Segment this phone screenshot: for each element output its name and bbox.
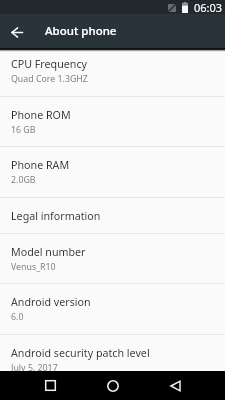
button[interactable]: Navigate up bbox=[0, 14, 34, 48]
button[interactable]: Phone ROM bbox=[0, 97, 225, 146]
button[interactable]: Recent apps bbox=[32, 371, 69, 400]
staticText: 06:03 bbox=[194, 0, 223, 14]
staticText: 16 GB bbox=[11, 124, 36, 136]
staticText: 6.0 bbox=[11, 311, 24, 323]
button[interactable]: Baseband version bbox=[0, 386, 225, 400]
staticText: Phone RAM bbox=[11, 158, 70, 173]
button[interactable]: Android security patch level bbox=[0, 335, 225, 385]
button[interactable]: Phone RAM bbox=[0, 147, 225, 197]
button[interactable]: CPU Frequency bbox=[0, 48, 225, 96]
staticText: 2.0GB bbox=[11, 174, 36, 186]
staticText: CPU Frequency bbox=[11, 57, 87, 72]
staticText: Venus_R10 bbox=[11, 261, 56, 273]
staticText: About phone bbox=[45, 23, 117, 39]
staticText: Model number bbox=[11, 245, 86, 260]
button[interactable]: Home bbox=[94, 371, 131, 400]
staticText: Phone ROM bbox=[11, 108, 71, 123]
button[interactable]: Model number bbox=[0, 234, 225, 283]
staticText: Android security patch level bbox=[11, 346, 150, 361]
button[interactable]: Back bbox=[157, 371, 194, 400]
button[interactable]: Legal information bbox=[0, 198, 225, 233]
staticText: Quad Core 1.3GHZ bbox=[11, 73, 88, 85]
staticText: Android version bbox=[11, 295, 91, 310]
button[interactable]: Android version bbox=[0, 284, 225, 334]
staticText: Legal information bbox=[11, 209, 101, 224]
staticText: July 5, 2017 bbox=[11, 362, 58, 374]
